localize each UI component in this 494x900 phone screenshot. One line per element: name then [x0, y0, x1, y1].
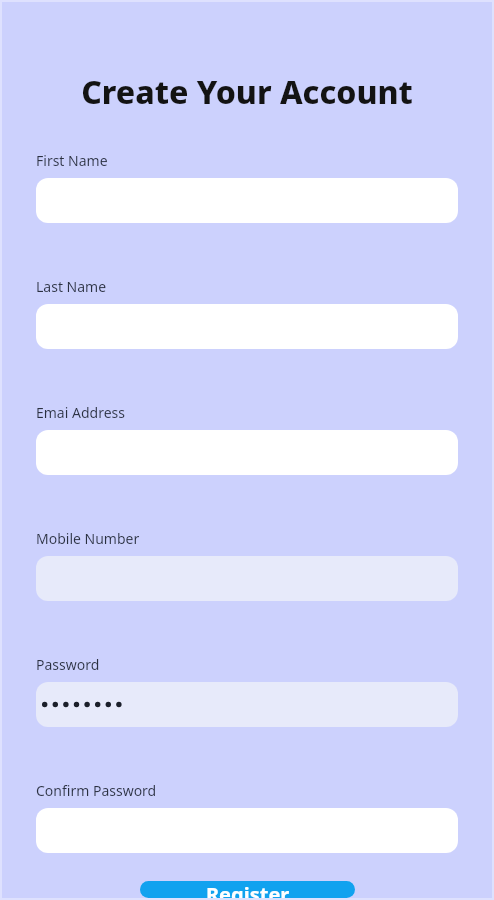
- staticText: Mobile Number: [36, 529, 140, 548]
- staticText: Register: [206, 881, 290, 898]
- button[interactable]: [36, 304, 458, 349]
- staticText: Last Name: [36, 277, 107, 296]
- staticText: First Name: [36, 151, 108, 170]
- button[interactable]: [36, 808, 458, 853]
- button[interactable]: [36, 178, 458, 223]
- button[interactable]: Register: [140, 881, 355, 898]
- staticText: Password: [36, 655, 100, 674]
- button[interactable]: [36, 682, 458, 727]
- staticText: Emai Address: [36, 403, 125, 422]
- staticText: Confirm Password: [36, 781, 157, 800]
- staticText: Create Your Account: [36, 70, 458, 114]
- button[interactable]: [36, 430, 458, 475]
